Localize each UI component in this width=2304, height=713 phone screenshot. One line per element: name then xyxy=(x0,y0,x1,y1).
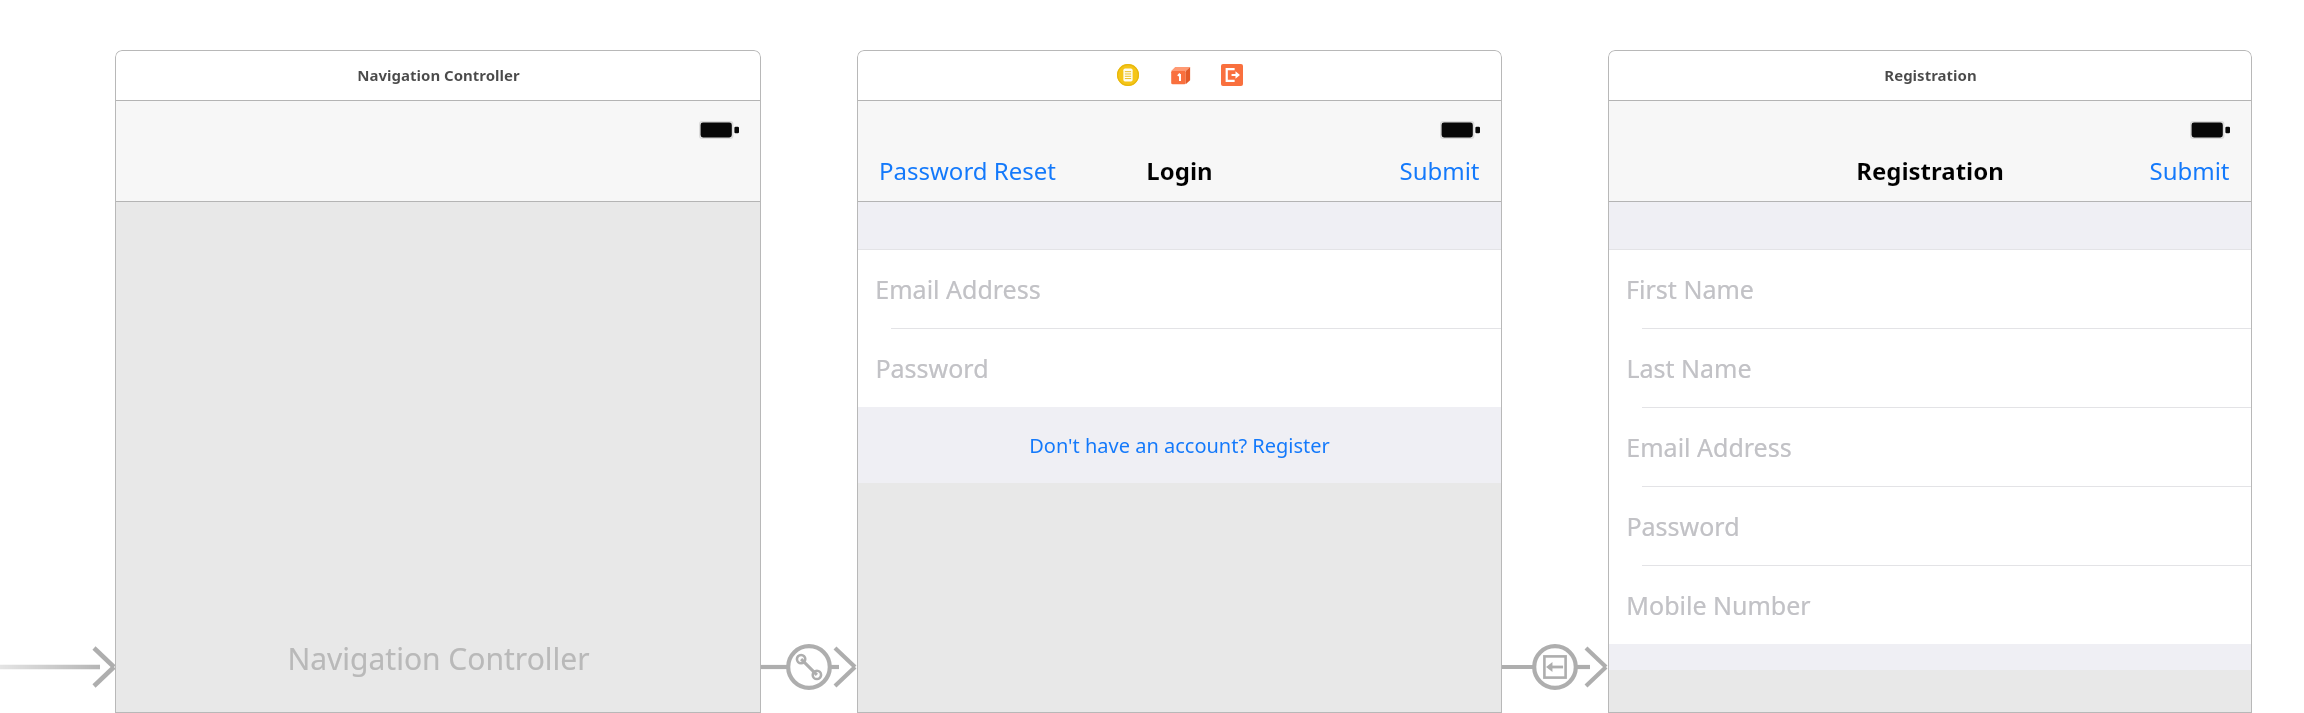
button[interactable]: Submit xyxy=(2149,139,2230,201)
staticText: Registration xyxy=(1856,154,2004,187)
button[interactable]: First responder xyxy=(1169,64,1191,86)
staticText: Email Address xyxy=(1626,430,1792,464)
button[interactable]: Email Address xyxy=(1608,408,2252,486)
staticText: Registration xyxy=(1884,65,1977,85)
button[interactable]: Email Address xyxy=(857,250,1502,328)
staticText: Mobile Number xyxy=(1626,588,1811,622)
staticText: Navigation Controller xyxy=(357,65,520,85)
button[interactable]: Don't have an account? Register xyxy=(857,407,1502,483)
button[interactable]: Mobile Number xyxy=(1608,566,2252,644)
button[interactable]: Password xyxy=(857,329,1502,407)
staticText: Submit xyxy=(1399,154,1480,187)
staticText: Don't have an account? Register xyxy=(1029,432,1330,459)
button[interactable]: Exit xyxy=(1221,64,1243,86)
button[interactable]: Submit xyxy=(1399,139,1480,201)
staticText: Password Reset xyxy=(879,154,1056,187)
button[interactable]: Show segue xyxy=(1502,641,1608,693)
button[interactable]: Password xyxy=(1608,487,2252,565)
staticText: Password xyxy=(1626,509,1740,543)
staticText: First Name xyxy=(1626,272,1754,306)
button[interactable]: Relationship segue xyxy=(761,641,857,693)
staticText: Password xyxy=(875,351,989,385)
button[interactable]: Last Name xyxy=(1608,329,2252,407)
staticText: Email Address xyxy=(875,272,1041,306)
staticText: Submit xyxy=(2149,154,2230,187)
staticText: Last Name xyxy=(1626,351,1752,385)
button[interactable]: First Name xyxy=(1608,250,2252,328)
staticText: Login xyxy=(1146,154,1213,187)
button[interactable]: View controller xyxy=(1117,64,1139,86)
staticText: Navigation Controller xyxy=(287,638,590,679)
button[interactable]: Password Reset xyxy=(879,139,1056,201)
